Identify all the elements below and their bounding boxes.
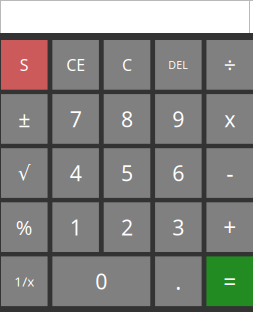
staticText: 8: [121, 105, 133, 133]
staticText: 2: [121, 213, 133, 241]
button[interactable]: =: [206, 256, 253, 306]
button[interactable]: 1/x: [1, 256, 48, 306]
staticText: 1/x: [14, 272, 34, 290]
button[interactable]: 6: [155, 148, 202, 198]
button[interactable]: -: [206, 148, 253, 198]
button[interactable]: %: [1, 202, 48, 252]
staticText: ±: [18, 105, 30, 133]
staticText: .: [175, 266, 181, 296]
button[interactable]: 0: [52, 256, 150, 306]
staticText: DEL: [168, 58, 188, 72]
button[interactable]: .: [155, 256, 202, 306]
button[interactable]: √: [1, 148, 48, 198]
staticText: =: [223, 266, 236, 296]
button[interactable]: C: [104, 40, 150, 90]
button[interactable]: ±: [1, 94, 48, 144]
staticText: 7: [70, 105, 82, 133]
staticText: -: [226, 158, 233, 188]
staticText: S: [20, 54, 29, 75]
button[interactable]: 5: [104, 148, 150, 198]
staticText: x: [224, 105, 235, 133]
staticText: C: [122, 54, 132, 75]
button[interactable]: 2: [104, 202, 150, 252]
button[interactable]: ÷: [206, 40, 253, 90]
button[interactable]: 3: [155, 202, 202, 252]
staticText: 0: [95, 267, 107, 295]
staticText: 9: [172, 105, 184, 133]
staticText: 1: [70, 213, 82, 241]
staticText: 6: [172, 159, 184, 187]
staticText: %: [16, 214, 33, 240]
staticText: 4: [70, 159, 82, 187]
button[interactable]: x: [206, 94, 253, 144]
staticText: +: [223, 212, 236, 242]
button[interactable]: 1: [52, 202, 99, 252]
button[interactable]: 8: [104, 94, 150, 144]
staticText: ÷: [224, 51, 236, 79]
button[interactable]: +: [206, 202, 253, 252]
button[interactable]: 9: [155, 94, 202, 144]
staticText: CE: [66, 54, 85, 75]
button[interactable]: DEL: [155, 40, 202, 90]
staticText: 5: [121, 159, 133, 187]
staticText: √: [18, 162, 31, 184]
button[interactable]: 4: [52, 148, 99, 198]
button[interactable]: CE: [52, 40, 99, 90]
button[interactable]: 7: [52, 94, 99, 144]
staticText: 3: [172, 213, 184, 241]
button[interactable]: S: [1, 40, 48, 90]
